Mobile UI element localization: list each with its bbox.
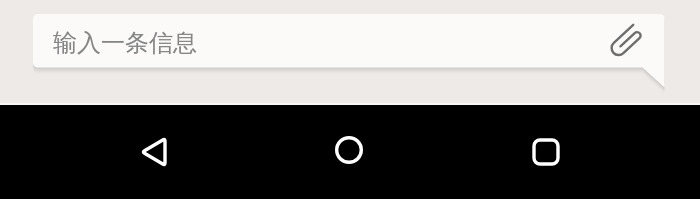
staticText: 输入一条信息 (53, 28, 197, 58)
button[interactable]: Back (123, 122, 183, 182)
button[interactable]: 输入一条信息 (33, 14, 603, 67)
button[interactable]: Recent apps (516, 122, 576, 182)
button[interactable]: Home (319, 120, 379, 180)
button[interactable]: Attach file (604, 17, 648, 61)
